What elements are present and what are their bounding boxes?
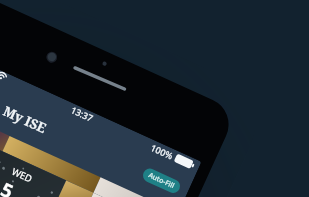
button[interactable]: My ISE phone screen — [0, 0, 309, 197]
